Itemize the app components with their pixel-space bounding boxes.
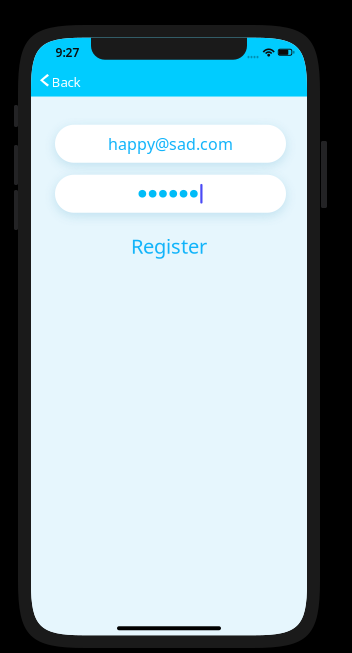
staticText: Back xyxy=(52,73,81,91)
button[interactable]: Register xyxy=(117,230,221,262)
button[interactable]: Back xyxy=(31,64,91,100)
button[interactable] xyxy=(55,175,286,213)
staticText: 9:27 xyxy=(55,44,79,60)
staticText: happy@sad.com xyxy=(108,133,233,154)
button[interactable]: happy@sad.com xyxy=(55,125,286,163)
staticText: Register xyxy=(131,233,207,259)
